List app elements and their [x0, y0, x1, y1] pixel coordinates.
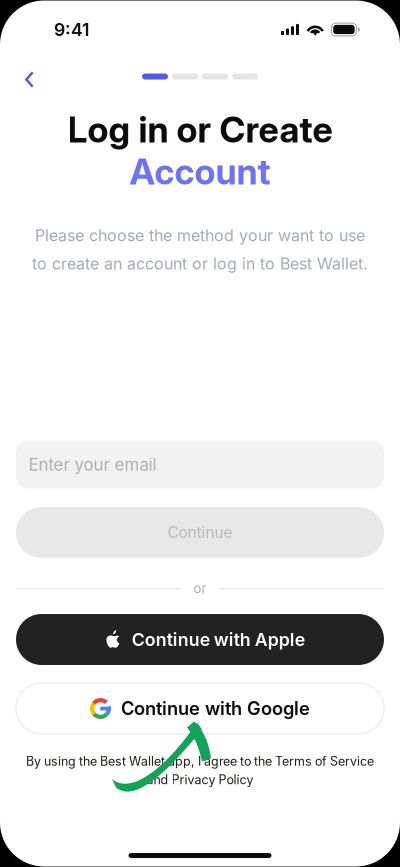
staticText: Continue with Apple	[132, 629, 305, 650]
staticText: or	[193, 581, 206, 596]
staticText: Please choose the method your want to us…	[35, 226, 365, 245]
button[interactable]: Continue with Google	[16, 683, 384, 734]
staticText: Log in or Create	[67, 108, 332, 151]
staticText: to create an account or log in to Best W…	[32, 254, 368, 273]
button[interactable]: Continue with Apple	[16, 614, 384, 665]
staticText: Continue	[167, 523, 232, 542]
staticText: Enter your email	[28, 454, 156, 475]
staticText: and Privacy Policy	[146, 772, 253, 787]
staticText: By using the Best Wallet app, I agree to…	[26, 754, 374, 768]
button[interactable]: Back	[8, 60, 50, 98]
button[interactable]: Continue	[16, 507, 384, 558]
staticText: 9:41	[54, 19, 89, 40]
staticText: Account	[129, 150, 270, 193]
staticText: Continue with Google	[121, 697, 310, 719]
